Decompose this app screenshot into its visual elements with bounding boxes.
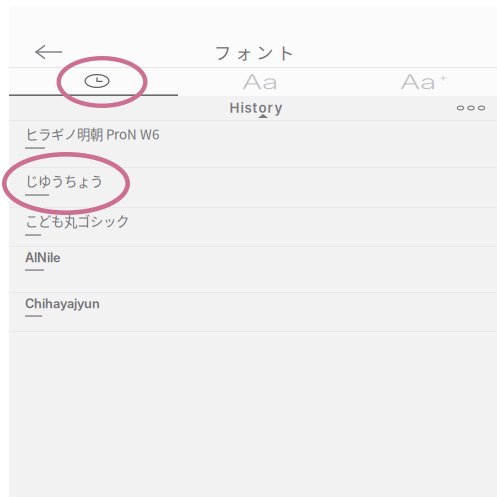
staticText: + bbox=[438, 67, 448, 87]
staticText: こども丸ゴシック bbox=[25, 211, 129, 230]
staticText: ヒラギノ明朝 ProN W6 bbox=[25, 124, 159, 143]
button[interactable]: AlNile bbox=[9, 247, 497, 293]
button[interactable]: Aa bbox=[343, 68, 497, 96]
staticText: AlNile bbox=[25, 250, 60, 265]
staticText: Aa bbox=[242, 63, 278, 100]
button[interactable]: Chihayajyun bbox=[9, 293, 497, 332]
button[interactable]: じゆうちょう bbox=[9, 168, 497, 208]
staticText: フォント bbox=[214, 39, 294, 65]
button[interactable]: Back bbox=[22, 30, 76, 74]
button[interactable]: ヒラギノ明朝 ProN W6 bbox=[9, 121, 497, 168]
button[interactable]: こども丸ゴシック bbox=[9, 208, 497, 247]
staticText: Chihayajyun bbox=[25, 296, 100, 311]
staticText: Aa bbox=[400, 63, 436, 100]
staticText: History bbox=[229, 100, 282, 116]
button[interactable]: More options bbox=[448, 96, 494, 120]
button[interactable]: Aa bbox=[180, 68, 340, 96]
button[interactable]: History bbox=[17, 67, 177, 95]
staticText: じゆうちょう bbox=[25, 171, 103, 190]
